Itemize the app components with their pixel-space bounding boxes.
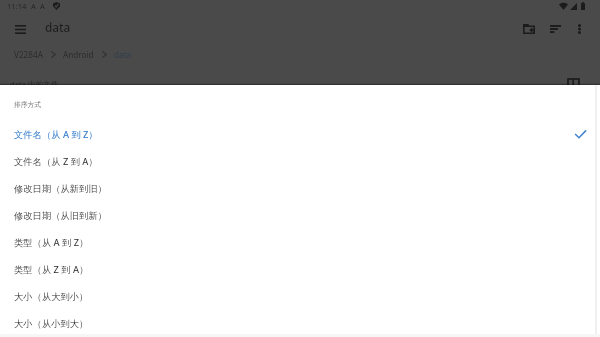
button[interactable]: 类型（从 A 到 Z） xyxy=(0,229,600,256)
staticText: 大小（从小到大） xyxy=(14,318,89,330)
button[interactable]: 大小（从小到大） xyxy=(0,310,600,337)
button[interactable]: 类型（从 Z 到 A） xyxy=(0,256,600,283)
staticText: data xyxy=(45,19,71,35)
staticText: 大小（从大到小） xyxy=(14,291,89,303)
staticText: V2284A xyxy=(14,49,43,60)
staticText: 排序方式 xyxy=(14,100,42,109)
button[interactable]: New folder xyxy=(516,14,542,44)
button[interactable]: 修改日期（从旧到新） xyxy=(0,202,600,229)
button[interactable]: 文件名（从 Z 到 A） xyxy=(0,148,600,175)
staticText: Android xyxy=(63,49,94,60)
staticText: A xyxy=(31,1,36,11)
button[interactable]: 修改日期（从新到旧） xyxy=(0,175,600,202)
button[interactable]: 大小（从大到小） xyxy=(0,283,600,310)
staticText: 11:14 xyxy=(7,1,27,11)
button[interactable]: 文件名（从 A 到 Z） xyxy=(0,121,600,148)
staticText: data xyxy=(114,49,132,60)
staticText: 文件名（从 A 到 Z） xyxy=(14,128,98,141)
staticText: data 中的文件 xyxy=(10,79,59,89)
staticText: 类型（从 Z 到 A） xyxy=(14,263,89,276)
button[interactable]: Menu xyxy=(0,14,40,44)
button[interactable]: More options xyxy=(568,14,590,44)
staticText: 修改日期（从旧到新） xyxy=(14,210,107,222)
button[interactable]: Sort xyxy=(542,14,568,44)
staticText: 类型（从 A 到 Z） xyxy=(14,236,89,249)
staticText: 文件名（从 Z 到 A） xyxy=(14,155,98,168)
staticText: 修改日期（从新到旧） xyxy=(14,183,107,195)
staticText: A xyxy=(40,1,45,11)
